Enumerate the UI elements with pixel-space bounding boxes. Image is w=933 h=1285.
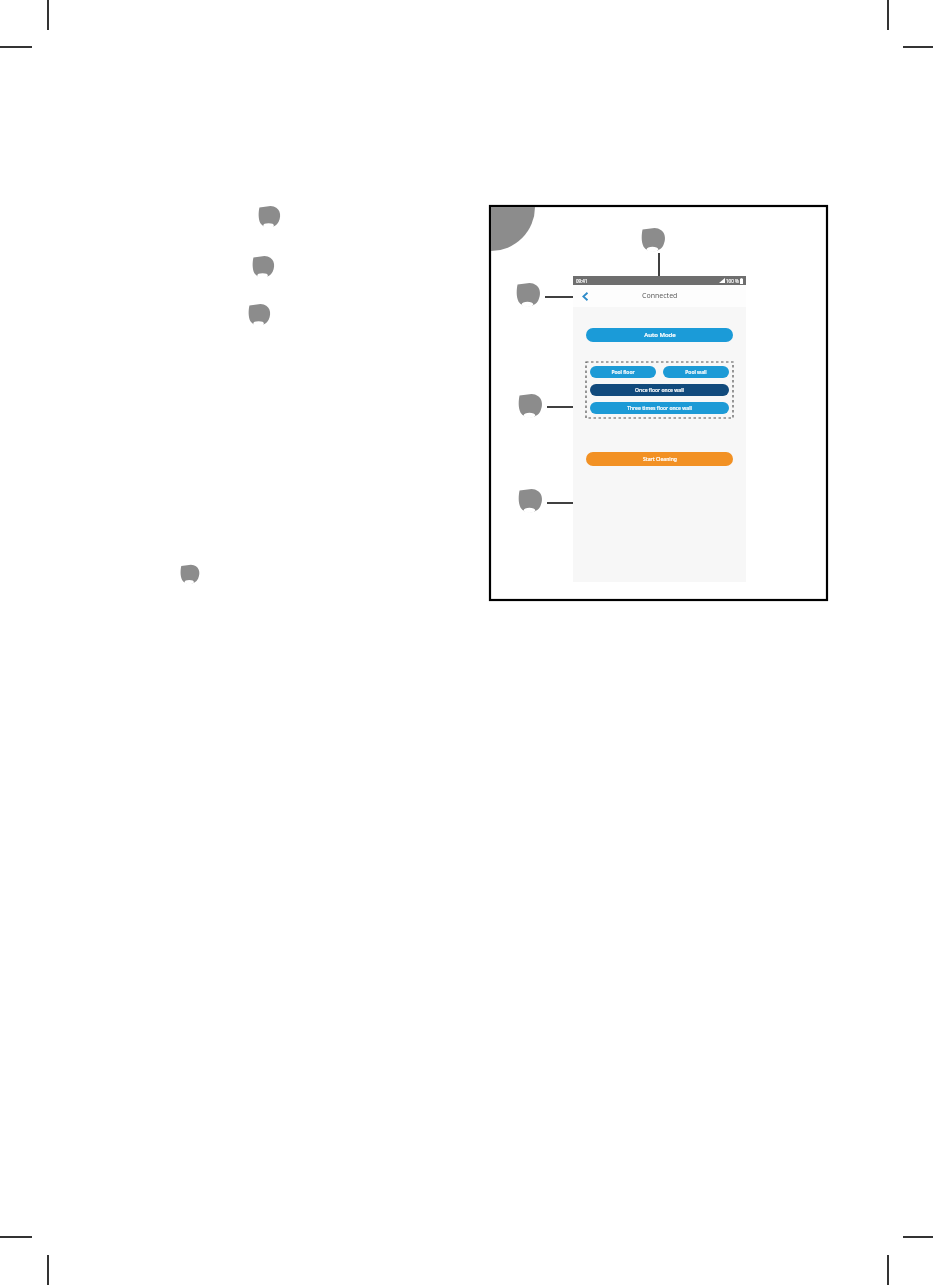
staticText: Three times floor once wall (627, 405, 692, 412)
staticText: Start Cleaning (643, 456, 677, 463)
staticText: Auto Mode (644, 331, 676, 339)
button[interactable]: Three times floor once wall (590, 402, 729, 414)
staticText: Pool floor (611, 369, 635, 376)
staticText: Connected (642, 291, 678, 301)
staticText: Once floor once wall (635, 387, 684, 394)
button[interactable]: Start Cleaning (586, 452, 733, 466)
staticText: 09:41 (576, 278, 588, 284)
button[interactable]: Auto Mode (586, 328, 733, 342)
button[interactable]: Once floor once wall (590, 384, 729, 396)
staticText: Pool wall (685, 369, 707, 376)
staticText: 100 % (726, 278, 739, 284)
button[interactable]: Pool floor (590, 366, 656, 378)
button[interactable]: Pool wall (663, 366, 729, 378)
button[interactable]: Back (577, 288, 593, 304)
